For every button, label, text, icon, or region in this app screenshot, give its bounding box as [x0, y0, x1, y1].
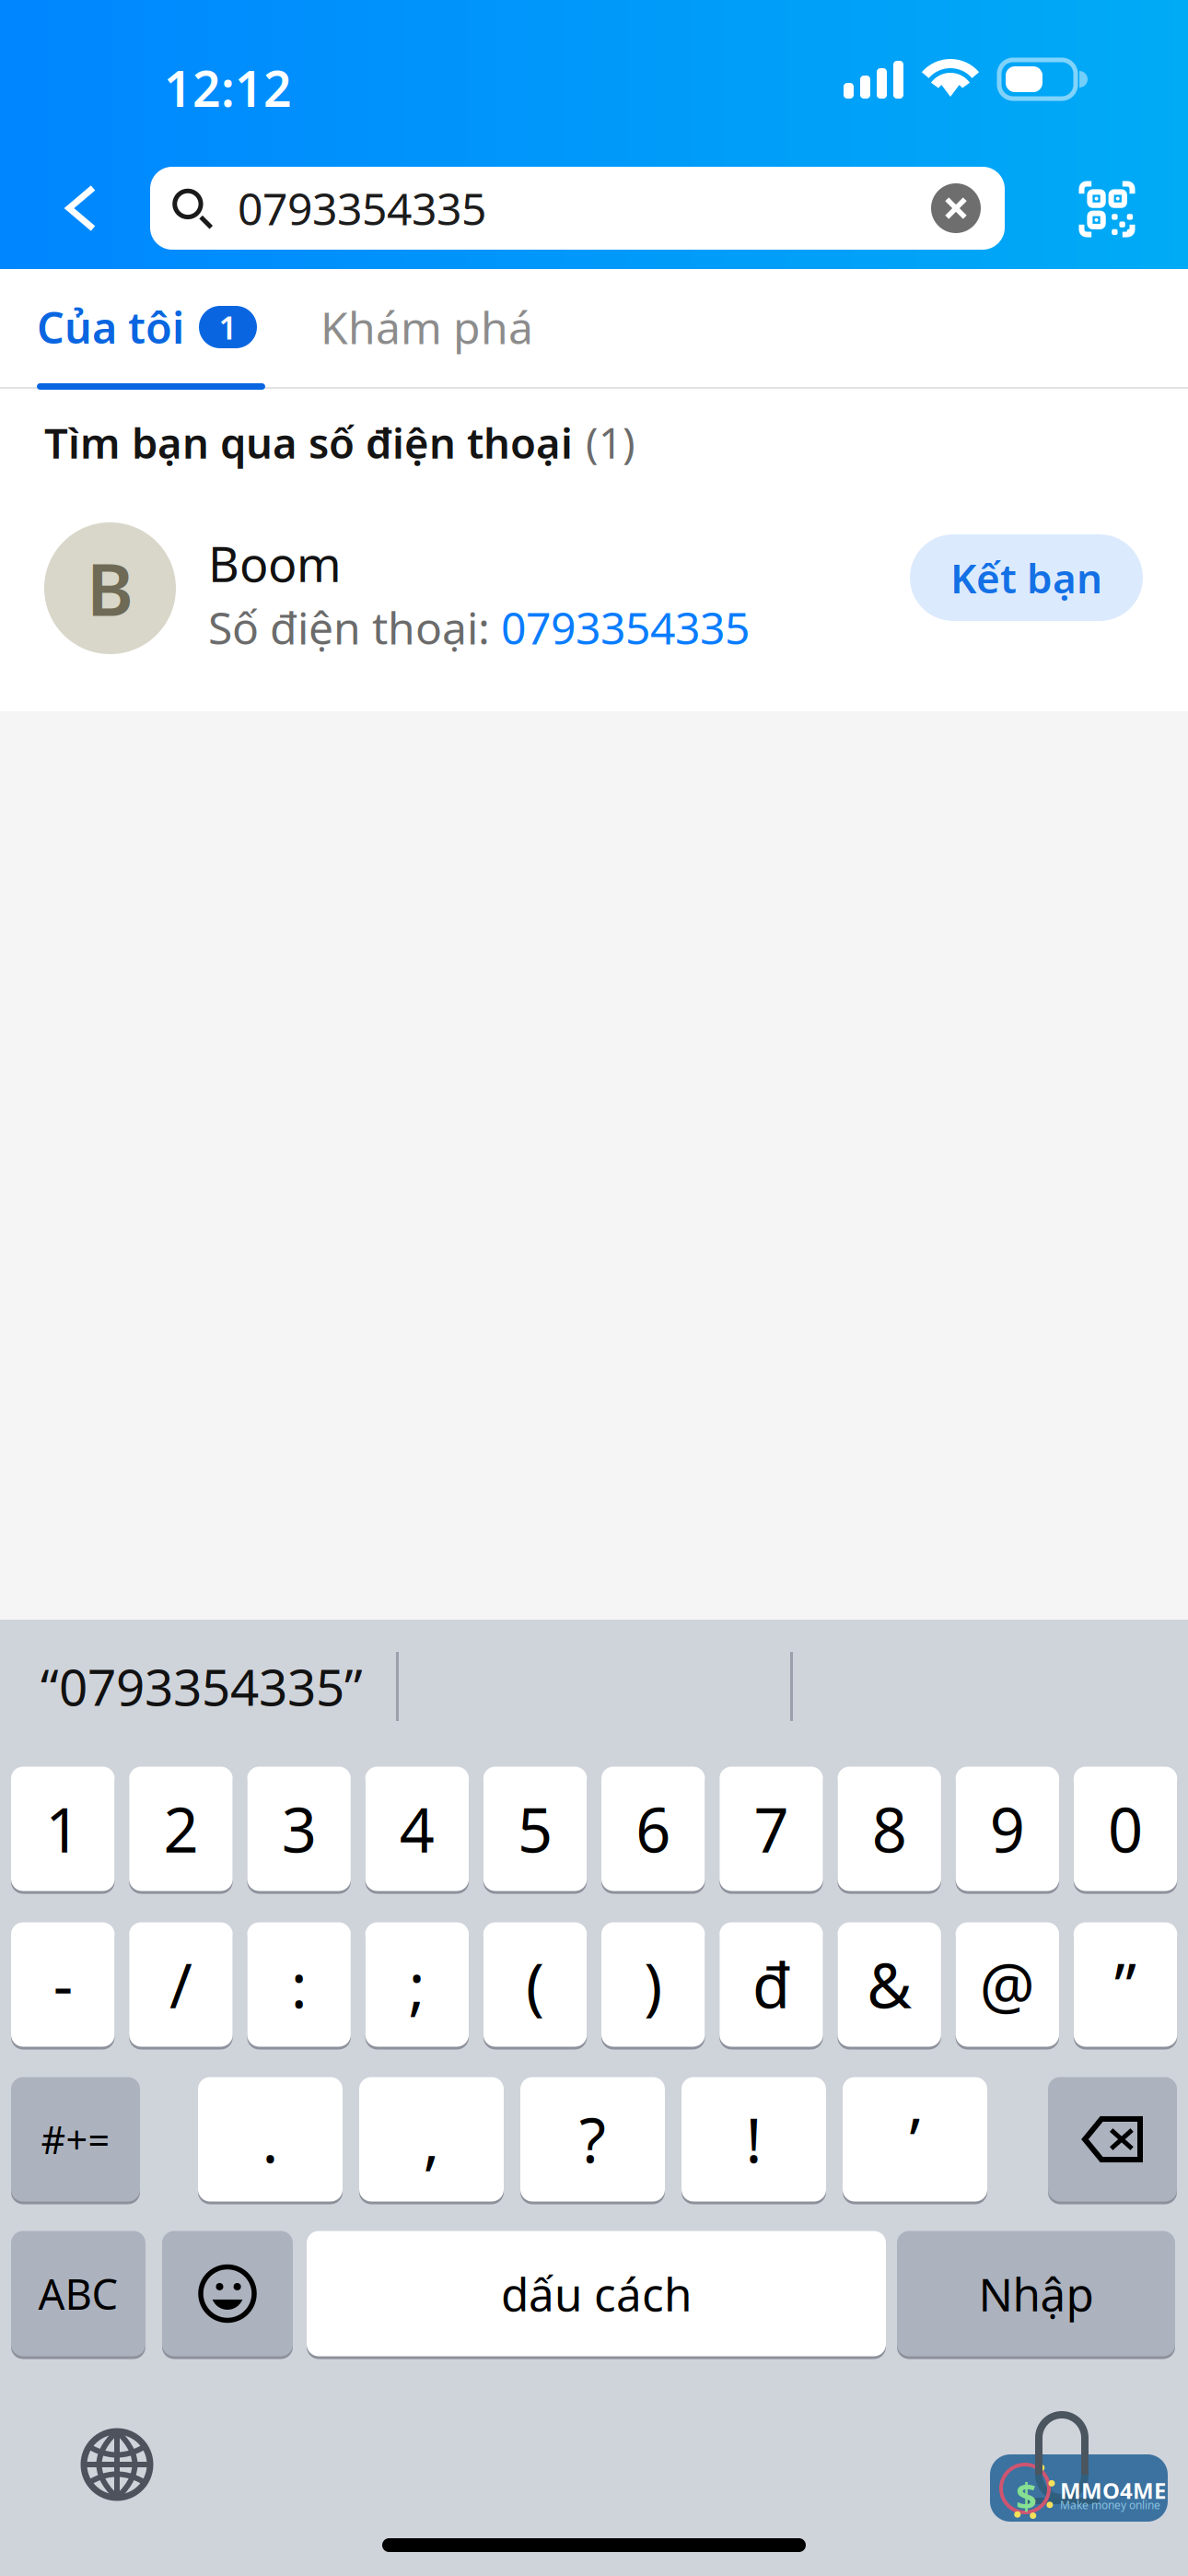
staticText: B	[87, 541, 134, 636]
staticText: 5	[518, 1788, 553, 1870]
button[interactable]: 8	[837, 1765, 941, 1892]
staticText: (	[526, 1944, 544, 2025]
staticText: Số điện thoại:	[208, 598, 501, 657]
staticText: 1	[45, 1788, 80, 1870]
staticText: 9	[990, 1788, 1025, 1870]
staticText: #+=	[41, 2114, 110, 2165]
button[interactable]: 3	[247, 1765, 351, 1892]
button[interactable]: ?	[520, 2076, 665, 2203]
staticText: 7	[754, 1788, 789, 1870]
staticText: Kết bạn	[950, 551, 1102, 605]
staticText: )	[644, 1944, 662, 2025]
button[interactable]: 0	[1074, 1765, 1177, 1892]
button[interactable]: 1	[11, 1765, 115, 1892]
button[interactable]: #+=	[11, 2076, 140, 2203]
staticText: ’	[909, 2098, 920, 2180]
staticText: Boom	[208, 532, 342, 595]
button[interactable]: 9	[956, 1765, 1059, 1892]
button[interactable]: ’	[843, 2076, 987, 2203]
staticText: Tìm bạn qua số điện thoại	[44, 415, 573, 470]
staticText: -	[53, 1944, 73, 2025]
staticText: 12:12	[164, 55, 292, 121]
staticText: @	[980, 1944, 1035, 2025]
button[interactable]: dấu cách	[307, 2230, 886, 2358]
button[interactable]: .	[198, 2076, 343, 2203]
button[interactable]: @	[956, 1921, 1059, 2048]
button[interactable]: Khám phá	[320, 289, 597, 365]
staticText: 0793354335	[238, 179, 486, 238]
staticText: $	[1016, 2471, 1037, 2520]
staticText: 3	[281, 1788, 316, 1870]
staticText: ,	[423, 2098, 440, 2180]
button[interactable]: Của tôi	[37, 289, 265, 365]
staticText: 4	[399, 1788, 434, 1870]
button[interactable]: -	[11, 1921, 115, 2048]
button[interactable]: Back	[37, 162, 125, 254]
button[interactable]: 6	[601, 1765, 705, 1892]
staticText: Nhập	[978, 2263, 1094, 2324]
button[interactable]	[1048, 2076, 1177, 2203]
staticText: MMO4ME	[1060, 2476, 1166, 2505]
staticText: 2	[163, 1788, 198, 1870]
button[interactable]: B	[0, 510, 1188, 685]
staticText: dấu cách	[501, 2263, 692, 2324]
button[interactable]: Nhập	[897, 2230, 1175, 2358]
staticText: Make money online	[1060, 2498, 1160, 2512]
button[interactable]: 7	[719, 1765, 823, 1892]
button[interactable]: ;	[365, 1921, 469, 2048]
staticText: Khám phá	[320, 298, 533, 356]
staticText: 0793354335	[501, 598, 750, 657]
staticText: ?	[579, 2098, 606, 2180]
button[interactable]: đ	[719, 1921, 823, 2048]
staticText: ”	[1114, 1944, 1137, 2025]
button[interactable]: (	[483, 1921, 587, 2048]
button[interactable]: :	[247, 1921, 351, 2048]
staticText: :	[291, 1944, 307, 2025]
button[interactable]: ABC	[11, 2230, 146, 2358]
staticText: /	[169, 1944, 192, 2025]
button[interactable]	[162, 2230, 293, 2358]
button[interactable]: 5	[483, 1765, 587, 1892]
staticText: ;	[409, 1944, 425, 2025]
button[interactable]: Change keyboard language	[80, 2428, 154, 2501]
staticText: đ	[752, 1944, 790, 2025]
staticText: .	[262, 2098, 279, 2180]
button[interactable]: 4	[365, 1765, 469, 1892]
staticText: Của tôi	[37, 299, 184, 356]
button[interactable]: ,	[359, 2076, 504, 2203]
staticText: 6	[636, 1788, 671, 1870]
button[interactable]: !	[681, 2076, 826, 2203]
button[interactable]: /	[129, 1921, 233, 2048]
button[interactable]: )	[601, 1921, 705, 2048]
button[interactable]: 2	[129, 1765, 233, 1892]
button[interactable]: ”	[1074, 1921, 1177, 2048]
button[interactable]: Clear text	[931, 183, 981, 233]
staticText: &	[867, 1944, 912, 2025]
staticText: “0793354335”	[41, 1653, 363, 1720]
staticText: ABC	[38, 2266, 118, 2321]
staticText: 1	[219, 306, 237, 348]
staticText: (1)	[586, 415, 635, 470]
staticText: !	[745, 2098, 762, 2180]
button[interactable]: &	[837, 1921, 941, 2048]
staticText: 0	[1108, 1788, 1143, 1870]
staticText: 8	[872, 1788, 907, 1870]
button[interactable]: Scan QR code	[1065, 167, 1149, 252]
